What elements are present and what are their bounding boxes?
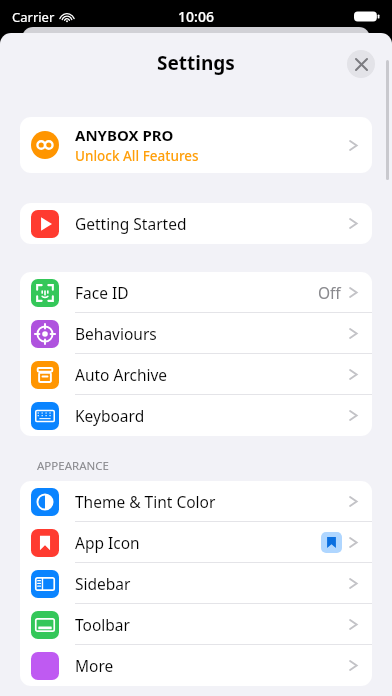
button[interactable]: ANYBOX PRO <box>20 117 372 173</box>
button[interactable]: Keyboard <box>20 395 372 436</box>
staticText: Unlock All Features <box>75 147 199 165</box>
button[interactable]: Getting Started <box>20 203 372 244</box>
staticText: Carrier <box>12 8 55 26</box>
staticText: Off <box>318 282 341 303</box>
button[interactable]: Theme & Tint Color <box>20 481 372 522</box>
staticText: Settings <box>157 50 235 76</box>
button[interactable]: Toolbar <box>20 604 372 645</box>
button[interactable]: Auto Archive <box>20 354 372 395</box>
staticText: APPEARANCE <box>37 458 109 474</box>
button[interactable]: Close <box>347 50 375 78</box>
button[interactable]: Face ID <box>20 272 372 313</box>
staticText: More <box>75 655 349 676</box>
staticText: Auto Archive <box>75 364 349 385</box>
staticText: Behaviours <box>75 323 349 344</box>
button[interactable]: Behaviours <box>20 313 372 354</box>
button[interactable]: App Icon <box>20 522 372 563</box>
staticText: Face ID <box>75 282 318 303</box>
staticText: ANYBOX PRO <box>75 125 174 145</box>
staticText: Getting Started <box>75 213 349 234</box>
staticText: 10:06 <box>178 7 214 26</box>
button[interactable]: More <box>20 645 372 686</box>
staticText: Sidebar <box>75 573 349 594</box>
staticText: App Icon <box>75 532 321 553</box>
staticText: Keyboard <box>75 405 349 426</box>
button[interactable]: Sidebar <box>20 563 372 604</box>
staticText: Toolbar <box>75 614 349 635</box>
staticText: Theme & Tint Color <box>75 491 349 512</box>
